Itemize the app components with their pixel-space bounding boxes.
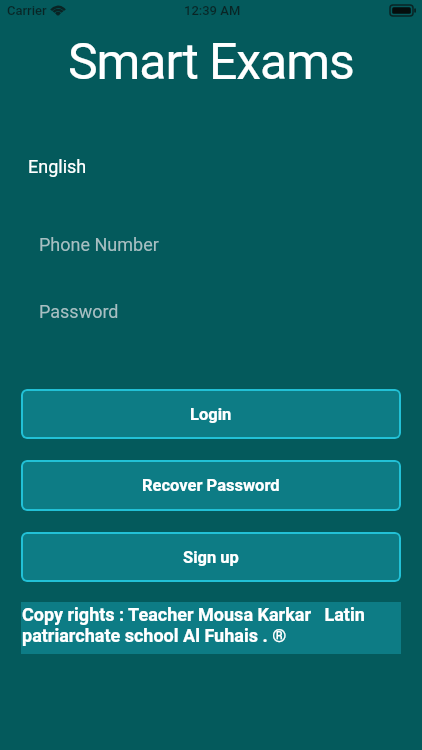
staticText: Recover Password [142, 476, 280, 495]
staticText: Sign up [183, 548, 239, 567]
other: Wi-Fi signal [50, 4, 66, 16]
other: Battery full [390, 5, 416, 16]
button[interactable]: Login [21, 389, 401, 439]
staticText: Smart Exams [68, 33, 354, 92]
button[interactable]: Password [10, 286, 412, 336]
button[interactable]: English [10, 141, 412, 191]
button[interactable]: Phone Number [10, 219, 412, 269]
button[interactable]: Sign up [21, 532, 401, 582]
staticText: Phone Number [39, 234, 159, 255]
staticText: English [28, 156, 87, 177]
button[interactable]: Recover Password [21, 460, 401, 511]
staticText: Copy rights : Teacher Mousa Karkar Latin… [22, 604, 399, 646]
staticText: Password [39, 301, 119, 322]
staticText: Carrier [7, 3, 47, 18]
staticText: 12:39 AM [184, 3, 241, 18]
staticText: Login [190, 405, 232, 424]
